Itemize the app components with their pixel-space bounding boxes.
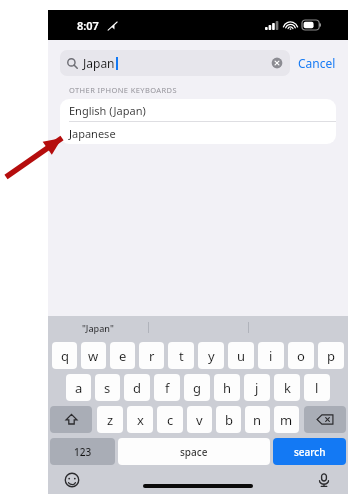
staticText: Japan (83, 55, 115, 71)
staticText: OTHER IPHONE KEYBOARDS (69, 85, 177, 95)
staticText: r (149, 347, 155, 365)
button[interactable]: h (214, 374, 240, 401)
staticText: n (253, 411, 262, 429)
staticText: l (315, 379, 319, 397)
staticText: Japanese (69, 126, 116, 141)
staticText: x (137, 411, 144, 429)
staticText: u (237, 347, 246, 365)
button[interactable]: Cancel (290, 51, 338, 75)
button[interactable]: q (52, 342, 77, 369)
button[interactable]: Dictation (316, 472, 332, 488)
staticText: o (297, 347, 305, 365)
staticText: English (Japan) (69, 103, 146, 118)
staticText: y (208, 347, 215, 365)
button[interactable]: 123 (50, 438, 115, 465)
button[interactable]: "Japan" (48, 316, 148, 339)
button[interactable]: s (95, 374, 120, 401)
staticText: t (179, 347, 184, 365)
staticText: s (104, 379, 111, 397)
button[interactable]: m (274, 406, 299, 433)
button[interactable]: x (127, 406, 153, 433)
button[interactable]: a (66, 374, 91, 401)
button[interactable]: Emoji keyboard (64, 472, 80, 488)
staticText: 8:07 (77, 18, 99, 33)
button[interactable]: v (187, 406, 212, 433)
button[interactable]: Shift (50, 406, 92, 433)
staticText: v (196, 411, 203, 429)
staticText: h (223, 379, 232, 397)
staticText: m (280, 411, 293, 429)
staticText: f (165, 379, 170, 397)
button[interactable]: e (110, 342, 135, 369)
button[interactable]: l (304, 374, 330, 401)
button[interactable]: space (118, 438, 270, 465)
button[interactable]: n (245, 406, 270, 433)
button[interactable]: d (124, 374, 150, 401)
button[interactable]: c (157, 406, 183, 433)
staticText: a (75, 379, 83, 397)
button[interactable]: y (198, 342, 224, 369)
button[interactable]: u (228, 342, 254, 369)
staticText: d (133, 379, 141, 397)
button[interactable]: b (216, 406, 241, 433)
button[interactable]: j (244, 374, 270, 401)
staticText: b (225, 411, 233, 429)
button[interactable]: k (274, 374, 300, 401)
staticText: z (107, 411, 114, 429)
staticText: search (294, 445, 326, 459)
staticText: p (327, 347, 335, 365)
button[interactable]: g (184, 374, 210, 401)
staticText: c (167, 411, 174, 429)
button[interactable]: z (97, 406, 123, 433)
button[interactable]: t (168, 342, 194, 369)
button[interactable]: Japanese (60, 122, 336, 144)
staticText: space (180, 445, 208, 459)
button[interactable]: w (81, 342, 106, 369)
staticText: e (119, 347, 127, 365)
button[interactable]: Clear text (271, 57, 283, 69)
button[interactable]: p (318, 342, 344, 369)
button[interactable]: r (139, 342, 164, 369)
button[interactable]: i (258, 342, 284, 369)
button[interactable]: o (288, 342, 314, 369)
button[interactable]: Backspace (304, 406, 346, 433)
staticText: "Japan" (82, 322, 114, 334)
button[interactable]: search (273, 438, 346, 465)
staticText: w (88, 347, 99, 365)
button[interactable]: f (154, 374, 180, 401)
staticText: g (193, 379, 201, 397)
staticText: j (255, 379, 259, 397)
staticText: 123 (74, 445, 92, 459)
button[interactable]: English (Japan) (60, 99, 336, 122)
staticText: q (61, 347, 69, 365)
staticText: i (269, 347, 273, 365)
button[interactable]: Japan (60, 50, 290, 76)
staticText: k (284, 379, 291, 397)
staticText: Cancel (298, 55, 336, 71)
